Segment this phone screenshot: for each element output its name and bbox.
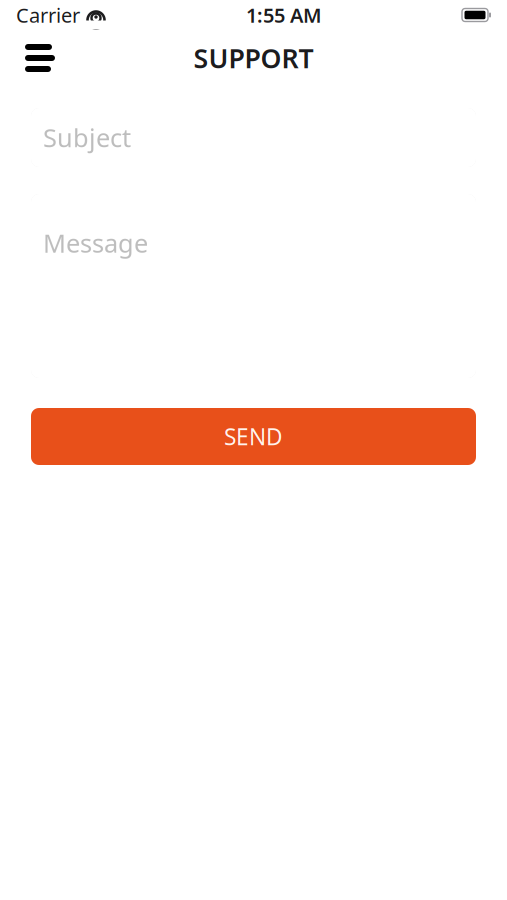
staticText: SEND [224, 421, 283, 451]
button[interactable]: SEND [31, 408, 476, 465]
staticText: Message [43, 226, 148, 260]
button[interactable]: Menu [18, 36, 62, 80]
button[interactable]: Subject [31, 108, 476, 167]
staticText: Carrier [16, 2, 80, 28]
staticText: 1:55 AM [246, 2, 322, 28]
staticText: SUPPORT [193, 40, 313, 76]
staticText: Subject [43, 121, 131, 154]
button[interactable]: Message [31, 194, 476, 378]
